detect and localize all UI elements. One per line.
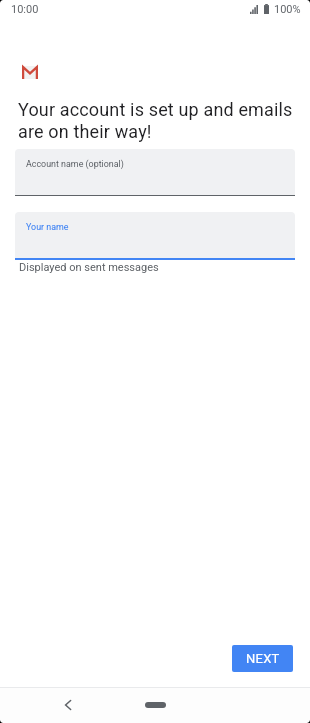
button[interactable]: NEXT <box>232 645 293 672</box>
staticText: NEXT <box>246 651 280 666</box>
staticText: Your name <box>26 222 69 232</box>
staticText: Your account is set up and emails are on… <box>18 99 300 142</box>
button[interactable]: Your name <box>15 212 295 260</box>
button[interactable]: Back <box>52 689 84 721</box>
staticText: 10:00 <box>11 3 39 16</box>
staticText: Displayed on sent messages <box>19 261 159 274</box>
button[interactable]: Home <box>145 702 166 708</box>
button[interactable]: Account name (optional) <box>15 149 295 196</box>
staticText: 100% <box>274 3 301 16</box>
staticText: Account name (optional) <box>26 159 124 169</box>
